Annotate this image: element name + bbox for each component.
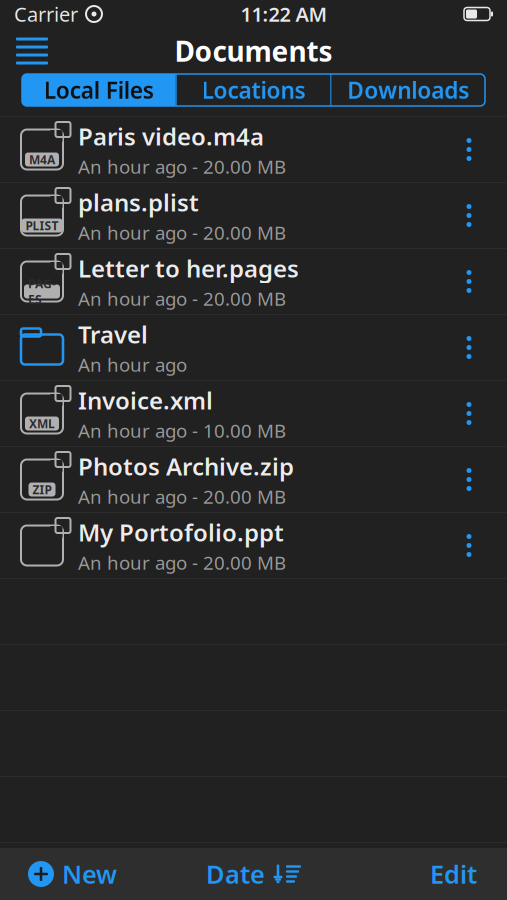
staticText: An hour ago - 20.00 MB xyxy=(78,484,286,509)
staticText: Paris video.m4a xyxy=(78,120,264,152)
staticText: An hour ago - 20.00 MB xyxy=(78,220,286,245)
staticText: Carrier xyxy=(14,1,78,27)
staticText: Downloads xyxy=(347,75,469,105)
button[interactable]: M4A xyxy=(0,117,507,183)
staticText: plans.plist xyxy=(78,186,199,218)
staticText: New xyxy=(62,857,117,891)
staticText: ZIP xyxy=(32,481,51,497)
staticText: Documents xyxy=(174,32,332,70)
staticText: Edit xyxy=(430,857,477,891)
staticText: An hour ago - 10.00 MB xyxy=(78,418,286,443)
button[interactable]: Travel xyxy=(0,315,507,381)
staticText: An hour ago xyxy=(78,352,187,377)
staticText: Travel xyxy=(78,318,148,350)
staticText: PLIST xyxy=(25,217,58,233)
button[interactable]: My Portofolio.ppt xyxy=(0,513,507,579)
button[interactable]: PLIST xyxy=(0,183,507,249)
staticText: Letter to her.pages xyxy=(78,252,299,284)
button[interactable]: Local Files xyxy=(22,74,176,106)
staticText: M4A xyxy=(29,151,55,167)
staticText: 11:22 AM xyxy=(240,1,327,27)
button[interactable]: Locations xyxy=(177,74,330,106)
button[interactable]: New xyxy=(20,851,125,897)
staticText: Invoice.xml xyxy=(78,384,213,416)
staticText: An hour ago - 20.00 MB xyxy=(78,550,286,575)
staticText: PAGES xyxy=(28,276,56,307)
staticText: Local Files xyxy=(44,75,154,105)
button[interactable]: Date xyxy=(198,851,309,897)
button[interactable]: Menu xyxy=(10,31,54,71)
button[interactable]: XML xyxy=(0,381,507,447)
staticText: An hour ago - 20.00 MB xyxy=(78,154,286,179)
button[interactable]: ZIP xyxy=(0,447,507,513)
button[interactable]: Downloads xyxy=(331,74,485,106)
staticText: An hour ago - 20.00 MB xyxy=(78,286,286,311)
staticText: Photos Archive.zip xyxy=(78,450,294,482)
button[interactable]: Edit xyxy=(420,851,487,897)
staticText: My Portofolio.ppt xyxy=(78,516,284,548)
staticText: Date xyxy=(206,857,265,891)
button[interactable]: PAGES xyxy=(0,249,507,315)
staticText: XML xyxy=(29,415,55,431)
staticText: Locations xyxy=(201,75,305,105)
